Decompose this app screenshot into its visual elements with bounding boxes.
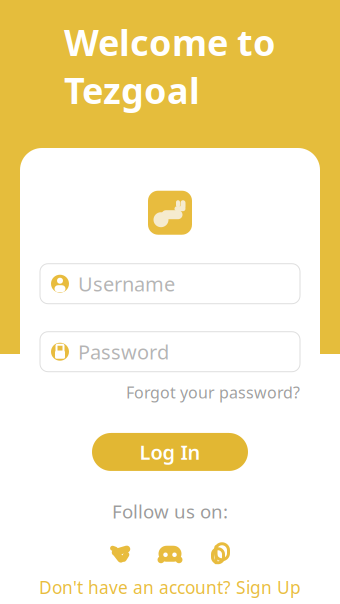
button[interactable]: Log In xyxy=(92,433,248,471)
staticText: Forgot your password? xyxy=(126,382,300,403)
button[interactable]: Discord xyxy=(155,540,185,568)
button[interactable]: Forgot your password? xyxy=(126,382,300,403)
staticText: Welcome to Tezgoal xyxy=(64,18,276,114)
button[interactable]: Twitter xyxy=(105,540,135,568)
staticText: Log In xyxy=(139,439,200,465)
staticText: Don't have an account? Sign Up xyxy=(39,576,301,599)
button[interactable]: Don't have an account? Sign Up xyxy=(39,576,301,599)
staticText: Password xyxy=(78,338,169,365)
staticText: Username xyxy=(78,270,175,297)
staticText: Follow us on: xyxy=(112,499,228,524)
button[interactable]: PayPal xyxy=(205,540,235,568)
staticText: Let's start xyxy=(110,144,229,176)
